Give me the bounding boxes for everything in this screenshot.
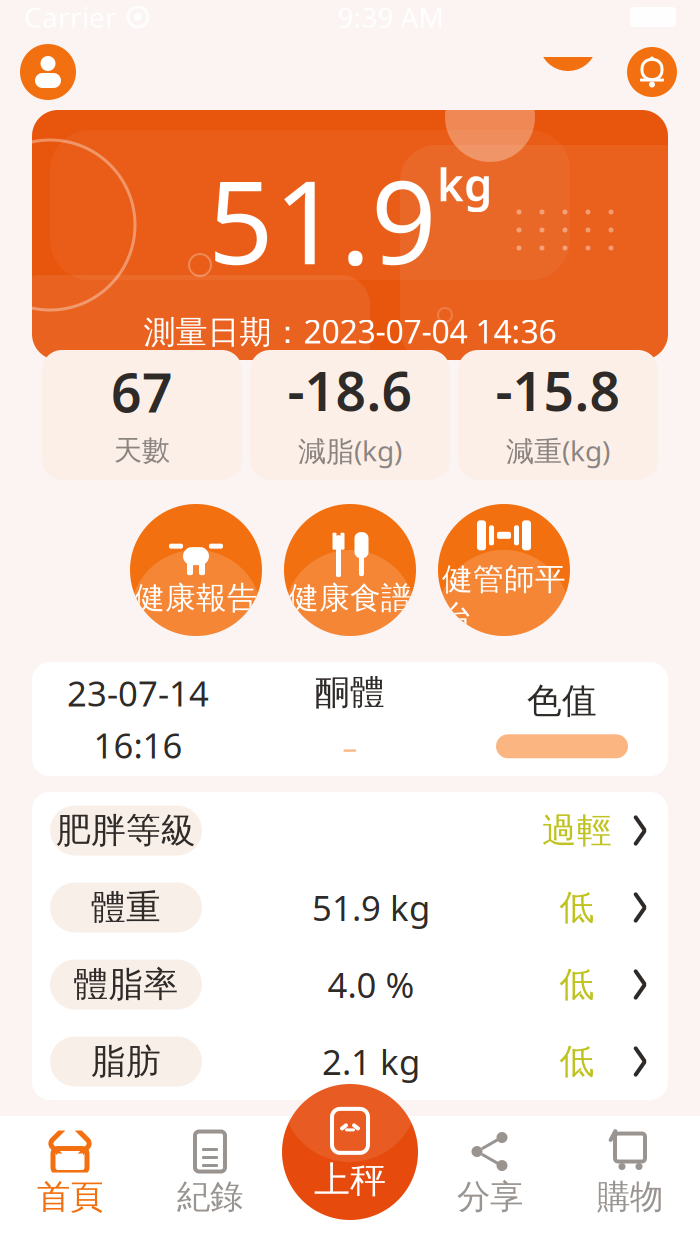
staticText: 51.9 kg xyxy=(312,884,430,930)
button[interactable]: 23-07-14 xyxy=(32,662,668,776)
button[interactable]: 脂肪 xyxy=(32,1023,668,1100)
staticText: 2.1 kg xyxy=(322,1038,420,1084)
button[interactable]: Notifications xyxy=(624,44,680,100)
staticText: 測量日期：2023-07-04 14:36 xyxy=(143,310,556,352)
staticText: -15.8 xyxy=(495,355,620,426)
staticText: 67 xyxy=(111,356,173,427)
button[interactable]: 健康食譜 xyxy=(284,504,416,636)
button[interactable]: Profile xyxy=(20,44,76,100)
staticText: 色值 xyxy=(527,680,597,722)
staticText: 健康報告 xyxy=(134,579,258,617)
button[interactable]: 購物 xyxy=(560,1119,700,1229)
staticText: 體重 xyxy=(91,886,161,929)
button[interactable]: 肥胖等級 xyxy=(32,792,668,869)
staticText: Carrier xyxy=(24,0,117,36)
staticText: 天數 xyxy=(114,433,170,468)
staticText: 脂肪 xyxy=(91,1040,161,1083)
button[interactable]: 紀錄 xyxy=(140,1119,280,1229)
staticText: – xyxy=(342,728,357,767)
button[interactable]: 上秤 xyxy=(282,1084,418,1220)
button[interactable]: 健管師平台 xyxy=(438,504,570,636)
staticText: 16:16 xyxy=(93,722,182,768)
staticText: 51.9 xyxy=(208,144,437,296)
button[interactable]: 67 xyxy=(42,350,242,480)
staticText: 上秤 xyxy=(314,1158,386,1202)
staticText: 健康食譜 xyxy=(288,579,412,617)
button[interactable]: 體重 xyxy=(32,869,668,946)
staticText: 酮體 xyxy=(315,671,385,714)
staticText: 分享 xyxy=(457,1176,523,1217)
staticText: 減脂(kg) xyxy=(298,432,402,469)
staticText: 23-07-14 xyxy=(67,670,209,716)
staticText: -18.6 xyxy=(287,355,412,426)
staticText: kg xyxy=(437,154,492,214)
staticText: 低 xyxy=(559,886,594,929)
button[interactable]: -15.8 xyxy=(458,350,658,480)
staticText: 體脂率 xyxy=(73,963,178,1006)
staticText: 健管師平台 xyxy=(442,560,566,636)
button[interactable]: Connection xyxy=(540,44,596,100)
staticText: 肥胖等級 xyxy=(56,809,196,852)
button[interactable]: 體脂率 xyxy=(32,946,668,1023)
staticText: 過輕 xyxy=(542,809,612,852)
staticText: 4.0 % xyxy=(327,961,414,1007)
staticText: 購物 xyxy=(597,1176,663,1217)
staticText: 紀錄 xyxy=(177,1176,243,1217)
staticText: 首頁 xyxy=(37,1176,103,1217)
button[interactable]: 健康報告 xyxy=(130,504,262,636)
staticText: 9:39 AM xyxy=(337,0,443,36)
staticText: 低 xyxy=(559,963,594,1006)
button[interactable]: 首頁 xyxy=(0,1119,140,1229)
button[interactable]: -18.6 xyxy=(250,350,450,480)
staticText: 減重(kg) xyxy=(506,432,610,469)
staticText: 低 xyxy=(559,1040,594,1083)
button[interactable]: 分享 xyxy=(420,1119,560,1229)
